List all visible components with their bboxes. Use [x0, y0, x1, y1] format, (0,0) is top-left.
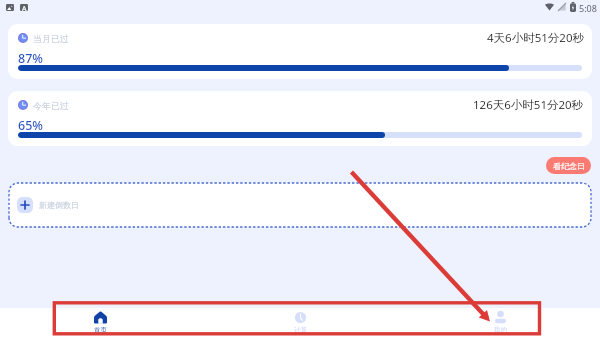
staticText: 4天6小时51分20秒 [487, 30, 584, 46]
staticText: 5:08 [579, 2, 597, 14]
button[interactable]: 当月已过 [8, 24, 592, 79]
staticText: 87% [18, 50, 43, 67]
staticText: 看纪念日 [553, 161, 585, 171]
button[interactable]: 新建倒数日 [17, 183, 591, 227]
staticText: 首页 [94, 326, 107, 334]
staticText: 我的 [494, 326, 507, 334]
staticText: 计算 [294, 326, 307, 334]
button[interactable]: 看纪念日 [546, 157, 591, 174]
staticText: A [22, 4, 27, 11]
button[interactable]: Profile [400, 308, 600, 337]
button[interactable]: Calculate [200, 308, 400, 337]
staticText: 当月已过 [33, 33, 69, 44]
staticText: 65% [18, 117, 43, 134]
button[interactable]: 今年已过 [8, 91, 592, 146]
button[interactable]: Home [0, 308, 200, 337]
staticText: 今年已过 [33, 100, 69, 111]
staticText: 126天6小时51分20秒 [473, 97, 584, 113]
staticText: 新建倒数日 [39, 200, 79, 210]
